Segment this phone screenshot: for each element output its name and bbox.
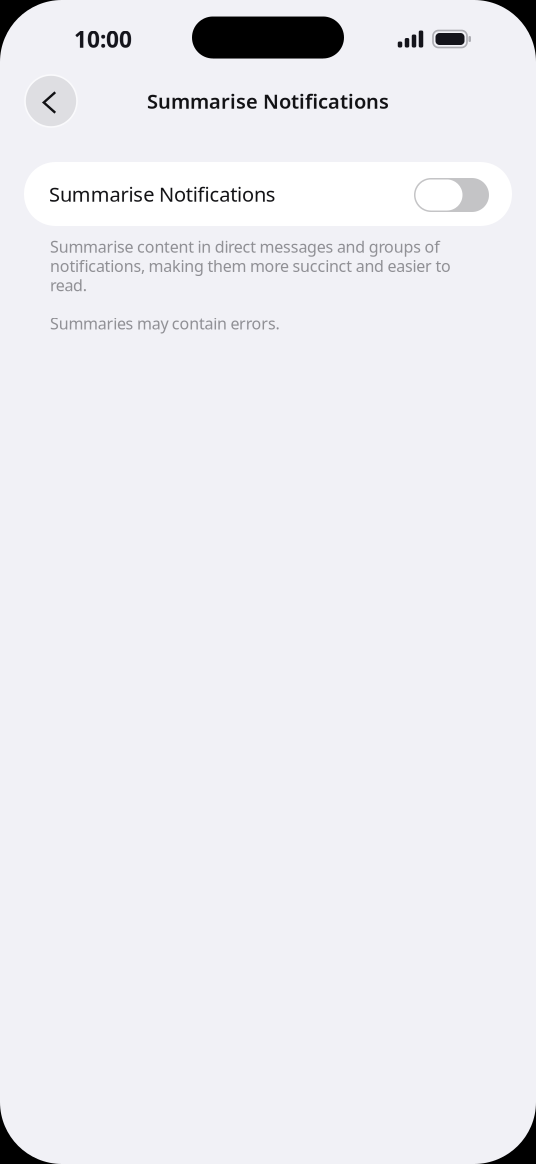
staticText: Summarise Notifications <box>49 181 276 207</box>
button[interactable]: Back <box>25 75 77 127</box>
staticText: Summarise Notifications <box>147 88 389 114</box>
staticText: Summaries may contain errors. <box>50 313 280 334</box>
staticText: Summarise content in direct messages and… <box>50 236 451 296</box>
button[interactable]: Summarise Notifications <box>24 162 512 226</box>
staticText: 10:00 <box>74 24 132 54</box>
